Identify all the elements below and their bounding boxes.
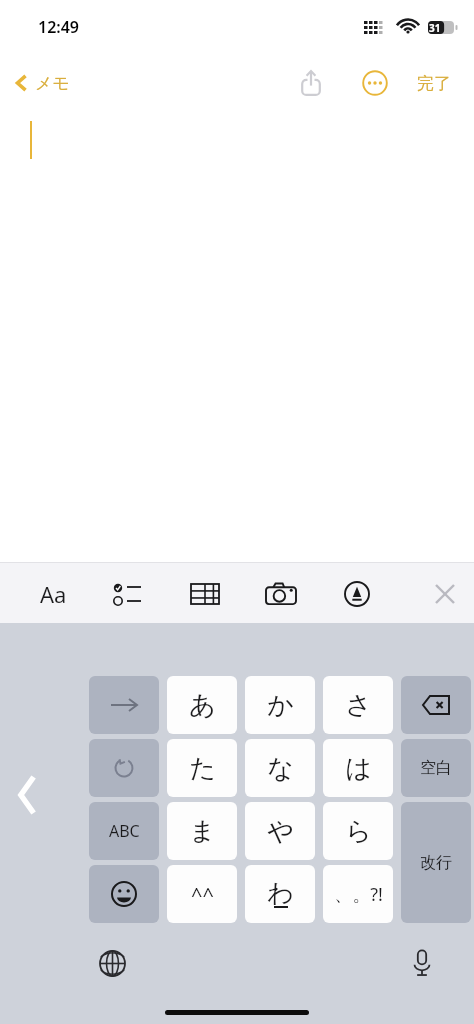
staticText: Aa [40, 579, 67, 609]
button[interactable]: わ [245, 865, 315, 923]
staticText: は [345, 752, 372, 785]
button[interactable] [89, 865, 159, 923]
staticText: か [267, 689, 294, 722]
button[interactable] [89, 676, 159, 734]
button[interactable]: Dictation [396, 941, 448, 985]
button[interactable]: Table [176, 563, 234, 624]
button[interactable]: Markup [328, 563, 386, 624]
button[interactable]: ま [167, 802, 237, 860]
staticText: ABC [109, 820, 140, 842]
staticText: ま [189, 815, 216, 848]
button[interactable]: メモ [8, 58, 76, 108]
button[interactable]: Camera [252, 563, 310, 624]
staticText: ら [345, 815, 372, 848]
button[interactable]: ABC [89, 802, 159, 860]
staticText: メモ [35, 73, 70, 94]
staticText: 12:49 [38, 16, 80, 38]
button[interactable]: は [323, 739, 393, 797]
button[interactable] [89, 739, 159, 797]
button[interactable]: さ [323, 676, 393, 734]
button[interactable]: な [245, 739, 315, 797]
button[interactable]: 、。?! [323, 865, 393, 923]
button[interactable]: た [167, 739, 237, 797]
button[interactable]: ^^ [167, 865, 237, 923]
button[interactable]: Switch keyboard [86, 941, 138, 985]
staticText: な [267, 752, 294, 785]
staticText: 31 [429, 21, 441, 35]
staticText: 空白 [420, 758, 452, 778]
button[interactable]: Checklist [100, 563, 158, 624]
staticText: た [189, 752, 216, 785]
button[interactable]: Share [288, 58, 334, 108]
staticText: 完了 [417, 73, 451, 94]
button[interactable]: ら [323, 802, 393, 860]
button[interactable] [401, 676, 471, 734]
button[interactable]: More options [352, 58, 398, 108]
staticText: ^^ [191, 881, 214, 908]
button[interactable]: や [245, 802, 315, 860]
button[interactable]: 改行 [401, 802, 471, 923]
staticText: あ [189, 689, 216, 722]
button[interactable]: 完了 [404, 58, 464, 108]
button[interactable]: 空白 [401, 739, 471, 797]
staticText: さ [345, 689, 372, 722]
button[interactable]: あ [167, 676, 237, 734]
button[interactable]: Close [416, 563, 474, 624]
button[interactable]: Aa [24, 563, 82, 624]
staticText: 改行 [420, 853, 452, 873]
staticText: や [267, 815, 294, 848]
staticText: 、。?! [334, 882, 383, 907]
staticText: わ [267, 877, 294, 910]
button[interactable]: か [245, 676, 315, 734]
